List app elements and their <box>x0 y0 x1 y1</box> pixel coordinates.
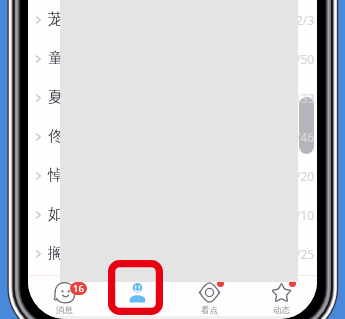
staticText: /20 <box>296 168 315 184</box>
staticText: 佟 <box>48 127 63 146</box>
button[interactable]: 茏 <box>28 0 317 39</box>
staticText: 动态 <box>273 305 290 316</box>
button[interactable]: 看点 <box>173 276 245 316</box>
staticText: 夏 <box>48 88 63 107</box>
button[interactable]: 联系人 <box>101 276 173 316</box>
button[interactable]: 16 <box>28 276 101 316</box>
staticText: 2/3 <box>296 12 315 28</box>
staticText: 消息 <box>56 305 73 316</box>
staticText: 茏 <box>48 10 63 29</box>
button[interactable]: Highlighted contacts tab <box>108 260 163 315</box>
button[interactable]: 夏 <box>28 78 317 117</box>
button[interactable]: 搁 <box>28 234 317 273</box>
staticText: /10 <box>296 207 315 223</box>
staticText: /46 <box>296 129 315 145</box>
button[interactable]: 如 <box>28 195 317 234</box>
button[interactable]: 动态 <box>245 276 317 316</box>
button[interactable]: 童 <box>28 39 317 78</box>
staticText: /50 <box>296 51 315 67</box>
staticText: 133 <box>294 90 315 106</box>
staticText: 搁 <box>48 244 63 263</box>
staticText: 如 <box>48 205 63 224</box>
staticText: /25 <box>296 246 315 262</box>
button[interactable]: 佟 <box>28 117 317 156</box>
staticText: 16 <box>73 282 84 295</box>
button[interactable]: 悼 <box>28 156 317 195</box>
staticText: 童 <box>48 49 63 68</box>
staticText: 悼 <box>48 166 63 185</box>
staticText: 看点 <box>201 305 218 316</box>
